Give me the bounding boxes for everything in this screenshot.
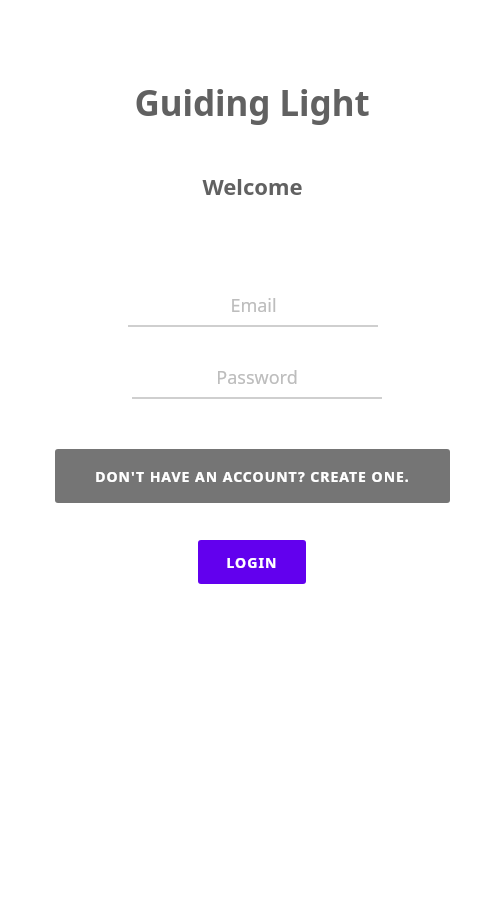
staticText: DON'T HAVE AN ACCOUNT? CREATE ONE. xyxy=(95,467,410,486)
button[interactable]: Password xyxy=(132,365,382,399)
staticText: Welcome xyxy=(202,171,303,201)
staticText: Password xyxy=(216,365,298,390)
staticText: Guiding Light xyxy=(134,79,370,127)
button[interactable]: LOGIN xyxy=(198,540,306,584)
staticText: Email xyxy=(230,293,277,318)
staticText: LOGIN xyxy=(226,553,278,572)
button[interactable]: Email xyxy=(128,293,378,327)
button[interactable]: DON'T HAVE AN ACCOUNT? CREATE ONE. xyxy=(55,449,450,503)
